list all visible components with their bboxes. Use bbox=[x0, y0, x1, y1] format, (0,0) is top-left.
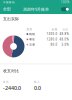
staticText: 类型 bbox=[26, 28, 32, 31]
button[interactable]: 交通 bbox=[26, 42, 68, 47]
staticText: 全部 bbox=[3, 7, 11, 12]
staticText: 2020年9月账单 bbox=[23, 7, 49, 12]
staticText: 3.0% bbox=[61, 43, 68, 46]
staticText: 金额 bbox=[51, 28, 57, 31]
button[interactable]: 全部 bbox=[3, 7, 11, 12]
staticText: 交通 bbox=[29, 43, 35, 46]
staticText: 支出 bbox=[3, 80, 9, 84]
staticText: 1300.0 bbox=[46, 32, 57, 36]
button[interactable]: 购物 bbox=[26, 31, 68, 37]
staticText: 收支对比 bbox=[3, 68, 19, 73]
button[interactable]: 餐饮 bbox=[26, 37, 68, 42]
staticText: 80.0 bbox=[50, 43, 57, 46]
staticText: 100% bbox=[61, 0, 69, 4]
staticText: 购物 bbox=[29, 32, 35, 36]
staticText: 48.0% bbox=[59, 38, 68, 41]
staticText: 中国移动 bbox=[3, 1, 15, 4]
button[interactable]: Switch view bbox=[61, 7, 69, 11]
staticText: 0.0 bbox=[34, 84, 41, 91]
staticText: 48.8% bbox=[59, 32, 68, 36]
staticText: 1280.0 bbox=[46, 38, 57, 41]
staticText: -2440.0 bbox=[3, 84, 21, 91]
staticText: 占比 bbox=[62, 28, 68, 31]
staticText: 收入 bbox=[34, 80, 40, 84]
staticText: 支出实际 bbox=[3, 16, 19, 21]
staticText: 餐饮 bbox=[29, 38, 35, 41]
